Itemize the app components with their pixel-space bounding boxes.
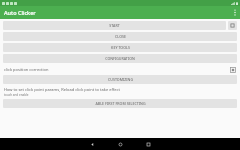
button[interactable]: Recent apps (141, 138, 155, 150)
staticText: CONFIGURATION (105, 56, 135, 61)
button[interactable]: ABLE FIRST FROM SELECTING (3, 99, 237, 108)
button[interactable]: click position correction (0, 65, 240, 74)
staticText: KEY TOOLS (111, 45, 130, 50)
button[interactable]: Home (113, 138, 127, 150)
staticText: CUSTOMIZING (108, 77, 133, 82)
staticText: CLOSE (115, 34, 126, 39)
button[interactable]: CLOSE (3, 32, 237, 41)
button[interactable]: KEY TOOLS (3, 43, 237, 52)
button[interactable]: CONFIGURATION (3, 54, 237, 63)
button[interactable]: More options (230, 6, 240, 19)
staticText: How to set click point params, Reload cl… (4, 87, 120, 92)
staticText: START (109, 23, 120, 28)
staticText: click position correction (4, 67, 49, 72)
button[interactable]: START (3, 21, 226, 30)
staticText: touch and enable (4, 93, 29, 97)
button[interactable]: Back (85, 138, 99, 150)
staticText: Auto Clicker (4, 9, 36, 16)
button[interactable]: Stop (228, 21, 237, 30)
staticText: ABLE FIRST FROM SELECTING (95, 101, 146, 106)
button[interactable]: CUSTOMIZING (3, 75, 237, 84)
